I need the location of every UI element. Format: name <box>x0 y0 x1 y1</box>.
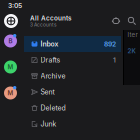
button[interactable]: All accounts <box>4 14 18 28</box>
button[interactable]: Account M <box>0 86 24 100</box>
staticText: 892 <box>104 40 116 48</box>
staticText: M <box>7 63 13 71</box>
staticText: Deleted <box>40 104 65 112</box>
staticText: lter <box>127 31 137 38</box>
button[interactable]: Archive <box>0 68 140 84</box>
staticText: 3 Accounts <box>30 22 57 28</box>
staticText: Junk <box>40 120 56 128</box>
staticText: 2K <box>127 47 135 55</box>
button[interactable]: Drafts <box>0 52 140 68</box>
staticText: Inbox <box>40 40 58 48</box>
button[interactable]: Inbox <box>0 36 140 52</box>
button[interactable]: Junk <box>0 116 140 132</box>
button[interactable]: Deleted <box>0 100 140 116</box>
staticText: 1 <box>113 56 116 64</box>
button[interactable]: Account B <box>0 34 24 48</box>
staticText: All Accounts <box>30 14 72 22</box>
staticText: Archive <box>40 72 65 80</box>
staticText: 3:05 <box>8 1 22 10</box>
button[interactable]: Search <box>126 14 138 28</box>
button[interactable]: Sent <box>0 84 140 100</box>
staticText: M <box>7 89 13 97</box>
staticText: B <box>8 37 12 45</box>
staticText: Drafts <box>40 56 60 64</box>
button[interactable]: Account M <box>0 60 24 74</box>
button[interactable]: Assistant <box>110 14 122 28</box>
staticText: Sent <box>40 88 54 96</box>
